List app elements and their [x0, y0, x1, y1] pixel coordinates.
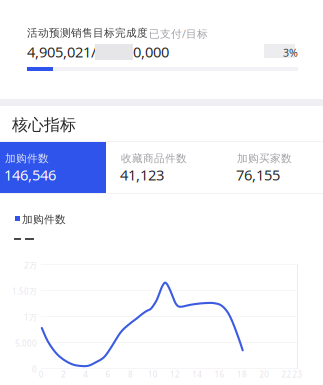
staticText: 3%	[283, 45, 298, 60]
staticText: 1.50万	[12, 286, 37, 297]
staticText: 4,905,021/	[27, 42, 96, 61]
staticText: 14	[192, 369, 202, 380]
staticText: 0	[39, 369, 44, 380]
staticText: 核心指标	[12, 115, 76, 135]
staticText: 5,000	[15, 338, 37, 349]
staticText: 18	[237, 369, 247, 380]
button[interactable]: 收藏商品件数	[106, 142, 222, 193]
staticText: 1万	[24, 312, 37, 323]
staticText: 8	[128, 369, 133, 380]
staticText: 2万	[24, 260, 37, 271]
staticText: 6	[106, 369, 111, 380]
staticText: 活动预测销售目标完成度	[27, 26, 148, 40]
staticText: 76,155	[236, 165, 280, 184]
staticText: 22	[281, 369, 291, 380]
staticText: 0	[32, 364, 37, 375]
staticText: 20	[259, 369, 269, 380]
staticText: 2	[61, 369, 66, 380]
staticText: 4	[83, 369, 88, 380]
button[interactable]: 加购件数	[0, 142, 106, 193]
staticText: 加购件数	[5, 152, 49, 165]
staticText: 16	[215, 369, 225, 380]
staticText: 12	[170, 369, 180, 380]
button[interactable]: 加购买家数	[222, 142, 323, 193]
staticText: 10	[148, 369, 158, 380]
staticText: 加购买家数	[237, 152, 292, 165]
staticText: 收藏商品件数	[121, 152, 187, 165]
staticText: 41,123	[120, 165, 164, 184]
staticText: 0,000	[133, 42, 169, 61]
staticText: 23	[292, 369, 302, 380]
staticText: 加购件数	[22, 213, 66, 226]
staticText: 已支付/目标	[149, 26, 208, 41]
staticText: 146,546	[4, 165, 56, 184]
